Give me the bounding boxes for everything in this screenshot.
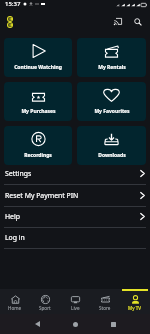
staticText: Store xyxy=(99,305,111,311)
button[interactable]: Home xyxy=(56,314,94,334)
staticText: My Rentals xyxy=(98,64,126,71)
button[interactable]: Back xyxy=(18,314,56,334)
button[interactable]: Help xyxy=(0,206,150,227)
staticText: Help xyxy=(5,212,21,221)
staticText: 15:37 xyxy=(5,0,21,8)
button[interactable]: Log in xyxy=(0,227,150,248)
staticText: My Favourites xyxy=(94,108,130,115)
button[interactable]: My Favourites xyxy=(77,82,146,121)
button[interactable]: My Rentals xyxy=(77,38,146,77)
staticText: Reset My Payment PIN xyxy=(5,191,79,200)
staticText: Home xyxy=(8,305,22,311)
button[interactable]: Store xyxy=(90,289,120,314)
button[interactable]: Home xyxy=(0,289,30,314)
button[interactable]: My Purchases xyxy=(4,82,72,121)
button[interactable]: My TV xyxy=(120,289,150,314)
button[interactable]: Recents xyxy=(94,314,132,334)
staticText: My Purchases xyxy=(21,108,56,115)
button[interactable]: Sport xyxy=(30,289,60,314)
button[interactable]: Search xyxy=(130,14,146,30)
button[interactable]: Recordings xyxy=(4,126,72,165)
button[interactable]: Settings xyxy=(0,163,150,184)
button[interactable]: Continue Watching xyxy=(4,38,72,77)
staticText: Recordings xyxy=(24,152,52,159)
button[interactable]: Downloads xyxy=(77,126,146,165)
staticText: Continue Watching xyxy=(14,64,62,71)
button[interactable]: Cast xyxy=(110,14,126,30)
staticText: Downloads xyxy=(98,152,126,159)
button[interactable]: Live xyxy=(60,289,90,314)
staticText: Log in xyxy=(5,233,25,242)
button[interactable]: Reset My Payment PIN xyxy=(0,185,150,206)
staticText: Sport xyxy=(39,305,51,311)
staticText: My TV xyxy=(128,305,142,311)
staticText: Settings xyxy=(5,169,32,178)
button[interactable]: EE xyxy=(3,10,17,34)
staticText: Live xyxy=(71,305,80,311)
